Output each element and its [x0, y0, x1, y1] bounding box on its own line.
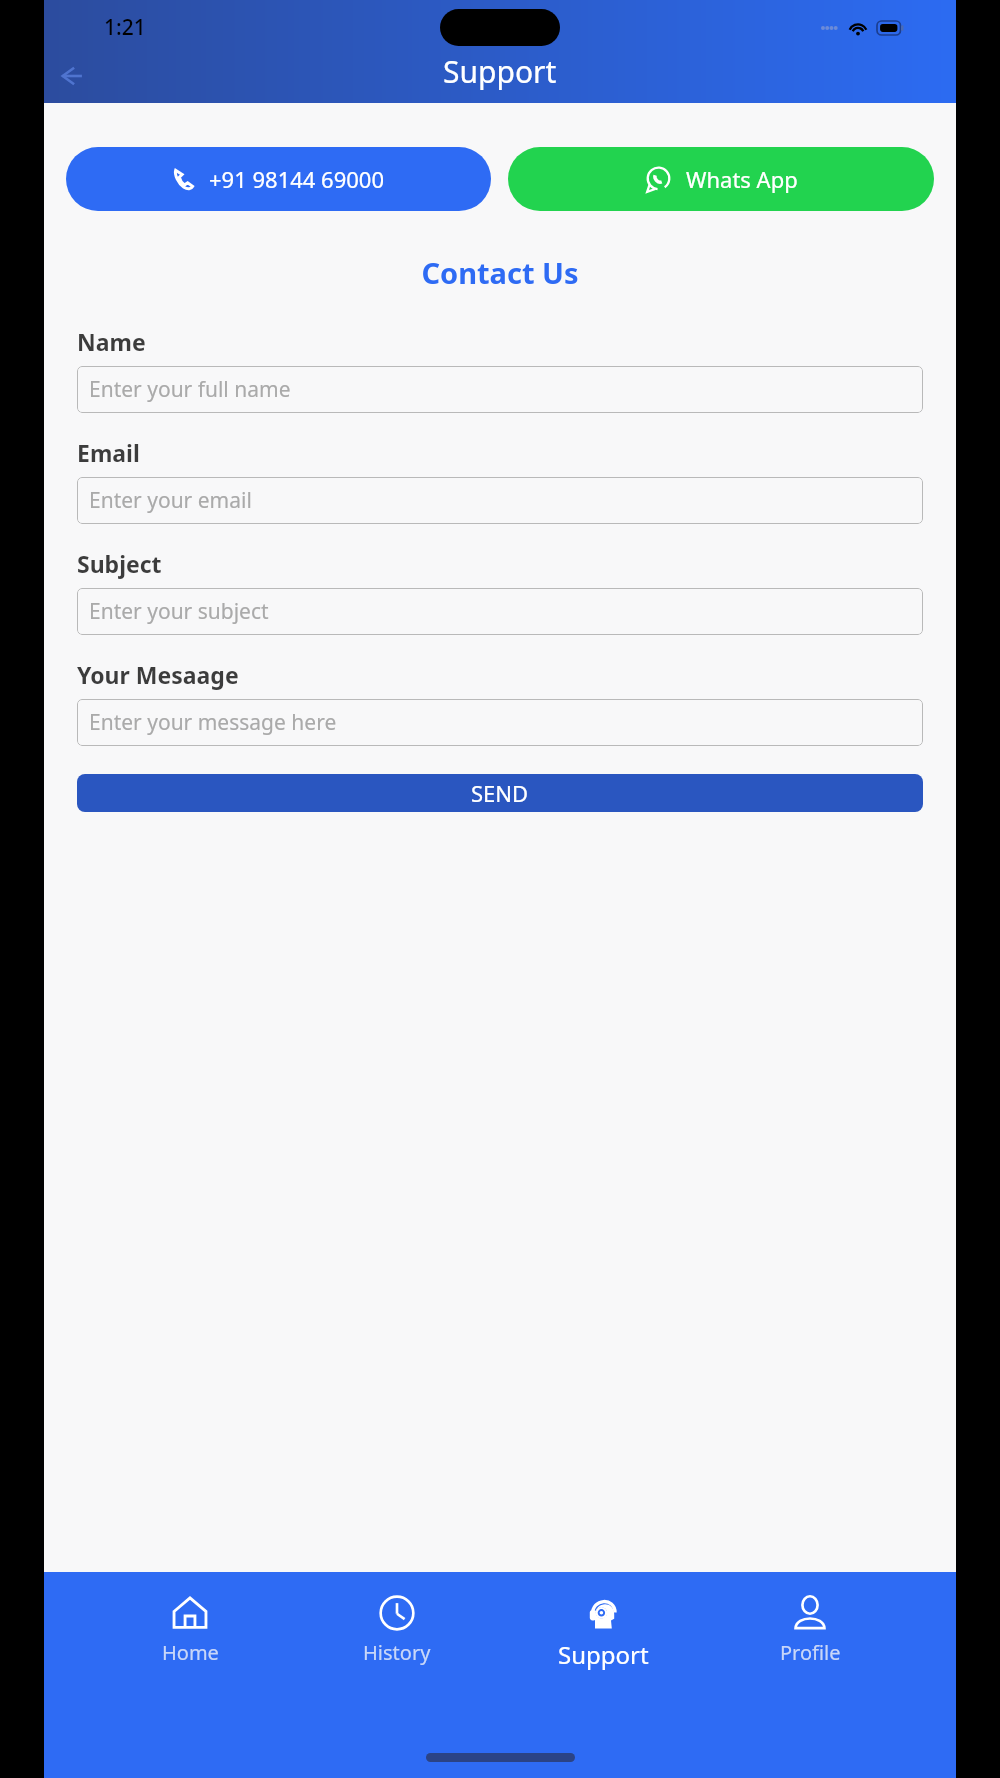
- staticText: Home: [162, 1639, 219, 1666]
- staticText: Profile: [780, 1639, 841, 1666]
- button[interactable]: Enter your email: [77, 477, 923, 524]
- staticText: Contact Us: [44, 253, 956, 292]
- staticText: 1:21: [104, 13, 146, 42]
- button[interactable]: History: [337, 1594, 457, 1666]
- staticText: Name: [77, 326, 146, 357]
- button[interactable]: Enter your full name: [77, 366, 923, 413]
- button[interactable]: Call: [66, 147, 491, 211]
- staticText: Email: [77, 437, 140, 468]
- staticText: Enter your subject: [89, 597, 269, 626]
- staticText: Enter your message here: [89, 708, 337, 737]
- staticText: Enter your full name: [89, 375, 291, 404]
- button[interactable]: Back: [58, 63, 84, 89]
- button[interactable]: Profile: [750, 1594, 870, 1666]
- staticText: Enter your email: [89, 486, 252, 515]
- button[interactable]: Support: [543, 1594, 663, 1671]
- button[interactable]: Enter your subject: [77, 588, 923, 635]
- button[interactable]: SEND: [77, 774, 923, 812]
- button[interactable]: WhatsApp: [508, 147, 934, 211]
- other: WhatsApp: [645, 166, 672, 193]
- button[interactable]: Enter your message here: [77, 699, 923, 746]
- staticText: Support: [443, 51, 557, 92]
- staticText: SEND: [471, 778, 529, 808]
- staticText: Your Mesaage: [77, 659, 239, 690]
- staticText: Whats App: [686, 164, 798, 194]
- button[interactable]: Home: [130, 1594, 250, 1666]
- staticText: Subject: [77, 548, 162, 579]
- other: Call: [172, 168, 195, 191]
- staticText: +91 98144 69000: [209, 164, 385, 194]
- staticText: Support: [558, 1638, 649, 1671]
- staticText: History: [363, 1639, 431, 1666]
